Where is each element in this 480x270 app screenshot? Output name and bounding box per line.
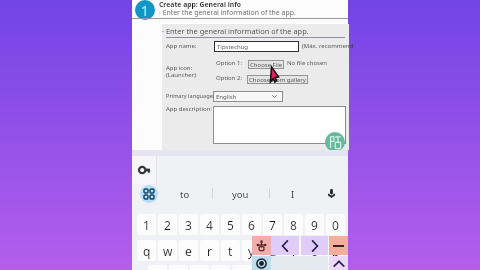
staticText: 8 xyxy=(290,217,297,233)
button[interactable]: English xyxy=(213,91,283,102)
staticText: 1 xyxy=(143,217,150,233)
button[interactable]: 9 xyxy=(305,214,324,235)
staticText: No file chosen xyxy=(287,59,328,67)
staticText: o xyxy=(311,243,319,259)
button[interactable]: 5 xyxy=(221,214,240,235)
staticText: 5 xyxy=(227,217,234,233)
staticText: · Enter the general information of the a… xyxy=(159,8,296,17)
button[interactable]: Choose File xyxy=(248,60,284,69)
button[interactable]: r xyxy=(200,240,219,261)
staticText: App description: xyxy=(166,105,212,113)
button[interactable]: Choose from gallery xyxy=(247,75,308,84)
staticText: Choose from gallery xyxy=(249,76,306,84)
staticText: 3 xyxy=(185,217,192,233)
staticText: App icon: xyxy=(166,64,193,72)
staticText: Choose File xyxy=(250,61,283,69)
button[interactable]: y xyxy=(242,240,261,261)
button[interactable]: w xyxy=(158,240,177,261)
button[interactable]: to xyxy=(162,185,208,203)
button[interactable]: 0 xyxy=(326,214,345,235)
button[interactable]: Keyboard apps xyxy=(140,185,158,203)
button[interactable]: h xyxy=(253,265,272,270)
button[interactable]: o xyxy=(305,240,324,261)
button[interactable]: Minimize xyxy=(329,236,348,255)
staticText: u xyxy=(269,243,277,259)
button[interactable]: e xyxy=(179,240,198,261)
button[interactable]: I xyxy=(273,185,313,203)
staticText: to xyxy=(180,188,190,201)
staticText: Option 2: xyxy=(216,74,243,82)
button[interactable]: t xyxy=(221,240,240,261)
button[interactable]: 8 xyxy=(284,214,303,235)
button[interactable]: 6 xyxy=(242,214,261,235)
staticText: · Enter the general information of the a… xyxy=(162,26,309,36)
staticText: r xyxy=(207,243,212,259)
button[interactable]: i xyxy=(284,240,303,261)
button[interactable]: Record xyxy=(252,256,271,270)
staticText: i xyxy=(292,243,296,259)
staticText: Create app: General info xyxy=(159,0,242,9)
staticText: 6 xyxy=(248,217,255,233)
staticText: 0 xyxy=(332,217,339,233)
staticText: p xyxy=(332,243,340,259)
staticText: w xyxy=(163,243,173,259)
staticText: t xyxy=(228,243,233,259)
button[interactable]: q xyxy=(137,240,156,261)
staticText: 7 xyxy=(269,217,276,233)
staticText: (Launcher) xyxy=(166,71,196,79)
staticText: Primary language: xyxy=(166,92,215,100)
button[interactable]: Voice input xyxy=(322,184,340,202)
button[interactable]: 7 xyxy=(263,214,282,235)
button[interactable]: 4 xyxy=(200,214,219,235)
button[interactable]: Password manager xyxy=(132,156,156,184)
button[interactable]: Next xyxy=(301,236,328,255)
button[interactable]: 3 xyxy=(179,214,198,235)
staticText: 2 xyxy=(164,217,171,233)
staticText: English xyxy=(216,93,237,101)
staticText: 1 xyxy=(141,1,150,20)
button[interactable]: Expand xyxy=(329,256,348,270)
staticText: 9 xyxy=(311,217,318,233)
button[interactable]: Previous xyxy=(271,236,299,255)
button[interactable]: p xyxy=(326,240,345,261)
staticText: (Máx. recommend xyxy=(302,42,354,50)
button[interactable]: Translate xyxy=(325,132,345,152)
button[interactable]: l xyxy=(316,265,335,270)
staticText: h xyxy=(259,268,267,270)
button[interactable]: 1 xyxy=(137,214,156,235)
button[interactable]: u xyxy=(263,240,282,261)
staticText: Option 1: xyxy=(216,59,243,67)
staticText: I xyxy=(291,188,295,201)
staticText: y xyxy=(248,243,255,259)
staticText: e xyxy=(185,243,192,259)
staticText: 4 xyxy=(206,217,213,233)
staticText: App name: xyxy=(166,42,197,50)
button[interactable]: you xyxy=(215,185,266,203)
button[interactable]: Move xyxy=(252,236,271,255)
staticText: Tipstechug xyxy=(217,43,248,51)
staticText: you xyxy=(232,188,249,201)
button[interactable]: 2 xyxy=(158,214,177,235)
staticText: q xyxy=(143,243,151,259)
